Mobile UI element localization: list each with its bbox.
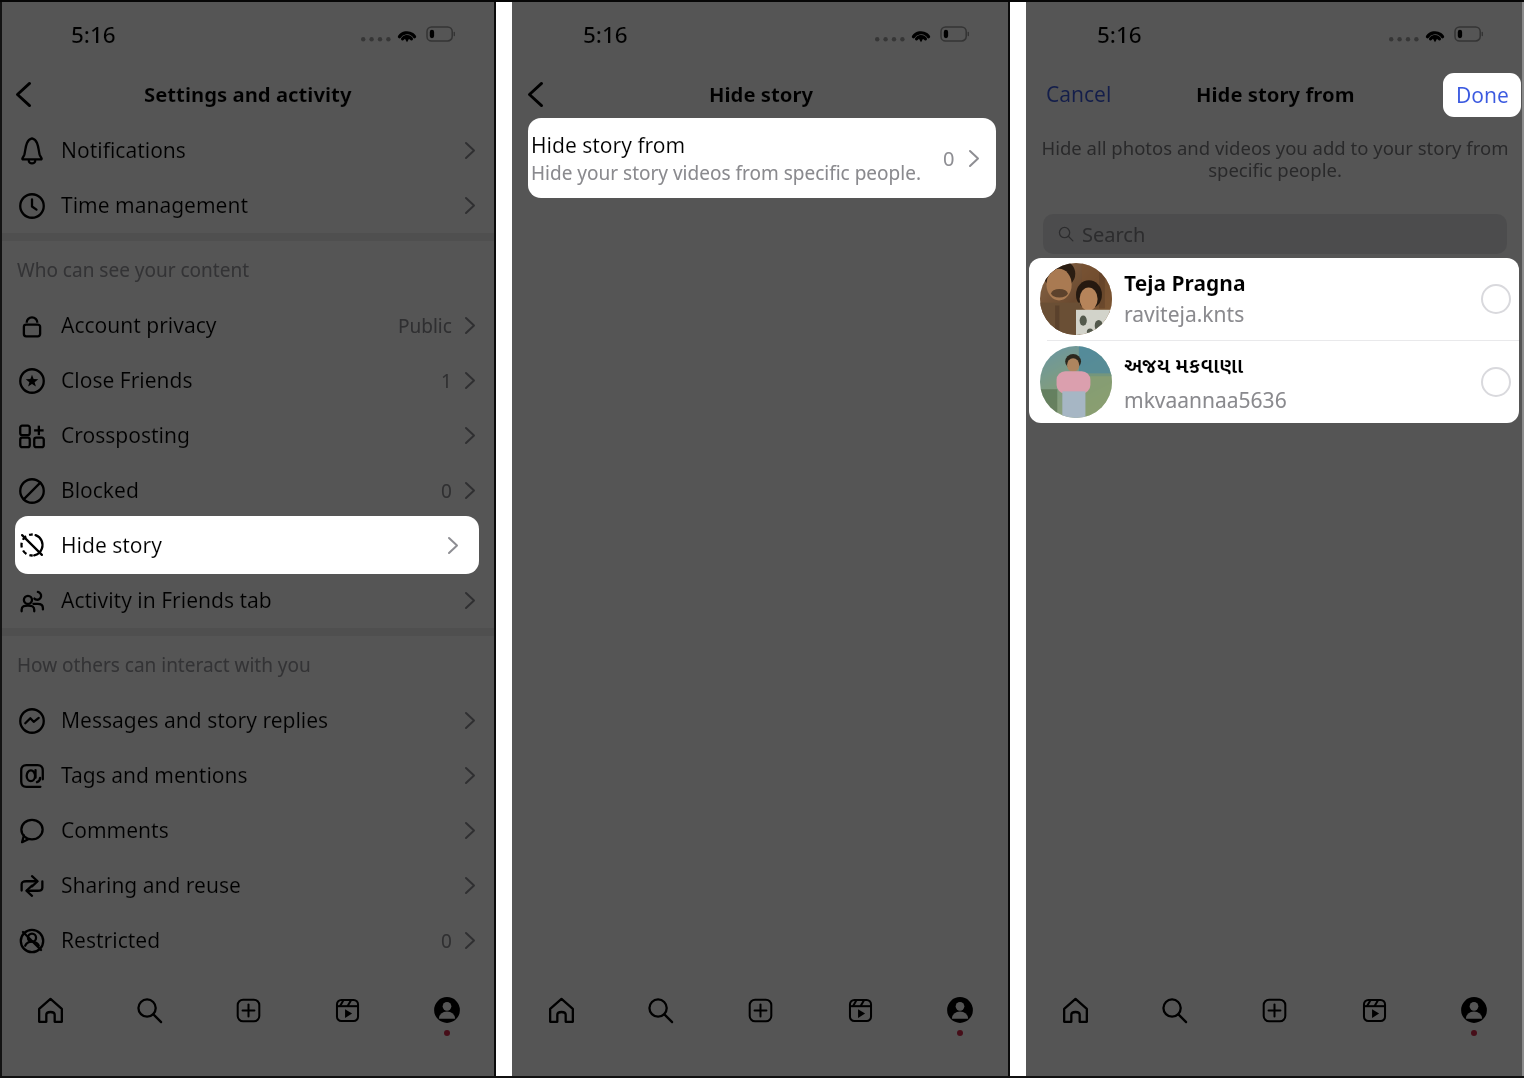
button[interactable]: Create [1224, 987, 1324, 1033]
button[interactable]: Profile [1424, 987, 1524, 1033]
button[interactable]: Home [0, 987, 100, 1033]
staticText: Who can see your content [17, 257, 250, 283]
button[interactable]: Crossposting [0, 408, 496, 463]
staticText: How others can interact with you [17, 652, 311, 678]
staticText: Public [398, 313, 452, 339]
staticText: 5:16 [1097, 19, 1142, 50]
button[interactable]: અજય મકવાણા [1029, 341, 1519, 423]
staticText: Messages and story replies [61, 706, 329, 735]
staticText: Time management [61, 191, 249, 220]
button[interactable]: Blocked [0, 463, 496, 518]
staticText: Hide story from [1196, 80, 1355, 108]
staticText: Hide story [709, 80, 814, 108]
staticText: 5:16 [71, 19, 116, 50]
staticText: અજય મકવાણા [1124, 349, 1243, 384]
staticText: Activity in Friends tab [61, 586, 272, 615]
button[interactable]: Sharing and reuse [0, 858, 496, 913]
button[interactable]: Search [611, 987, 710, 1033]
staticText: Hide story [61, 531, 162, 560]
staticText: Teja Pragna [1124, 269, 1246, 298]
staticText: 5:16 [583, 19, 628, 50]
button[interactable]: Teja Pragna [1029, 258, 1519, 340]
button[interactable]: Hide story [0, 518, 496, 573]
staticText: Restricted [61, 926, 161, 955]
button[interactable]: Messages and story replies [0, 693, 496, 748]
staticText: Settings and activity [144, 80, 352, 108]
staticText: 1 [441, 368, 452, 394]
staticText: Close Friends [61, 366, 193, 395]
button[interactable]: Search [100, 987, 199, 1033]
button[interactable]: Search [1125, 987, 1224, 1033]
button[interactable]: Create [199, 987, 298, 1033]
button[interactable]: Profile [910, 987, 1010, 1033]
button[interactable]: Search [1043, 214, 1507, 254]
staticText: Hide your story videos from specific peo… [531, 160, 921, 186]
button[interactable]: Cancel [1044, 78, 1114, 111]
button[interactable]: Profile [397, 987, 496, 1033]
button[interactable]: Back [514, 73, 556, 115]
staticText: Hide story [61, 531, 162, 560]
button[interactable]: Home [1026, 987, 1125, 1033]
button[interactable]: Create [710, 987, 810, 1033]
staticText: Hide story from [531, 131, 686, 160]
button[interactable]: Done [1443, 73, 1521, 117]
staticText: Blocked [61, 476, 139, 505]
button[interactable]: Reels [810, 987, 910, 1033]
staticText: Crossposting [61, 421, 190, 450]
button[interactable]: Reels [298, 987, 397, 1033]
button[interactable]: Restricted [0, 913, 496, 968]
staticText: 0 [943, 145, 955, 172]
button[interactable]: Notifications [0, 123, 496, 178]
staticText: raviteja.knts [1124, 300, 1245, 329]
button[interactable]: Account privacy [0, 298, 496, 353]
staticText: Sharing and reuse [61, 871, 241, 900]
button[interactable]: Hide story from [528, 118, 996, 198]
button[interactable]: Home [512, 987, 611, 1033]
button[interactable]: Reels [1324, 987, 1424, 1033]
staticText: Done [1456, 81, 1509, 110]
staticText: mkvaannaa5636 [1124, 386, 1287, 415]
staticText: Hide all photos and videos you add to yo… [1038, 135, 1512, 183]
staticText: Account privacy [61, 311, 217, 340]
button[interactable]: Comments [0, 803, 496, 858]
staticText: 0 [441, 478, 452, 504]
button[interactable]: Close Friends [0, 353, 496, 408]
staticText: Tags and mentions [61, 761, 248, 790]
button[interactable]: Time management [0, 178, 496, 233]
button[interactable]: Activity in Friends tab [0, 573, 496, 628]
button[interactable]: Tags and mentions [0, 748, 496, 803]
staticText: 0 [441, 928, 452, 954]
staticText: Notifications [61, 136, 186, 165]
staticText: Search [1082, 221, 1146, 248]
staticText: Cancel [1046, 80, 1112, 109]
button[interactable]: Hide story [15, 516, 479, 574]
staticText: Comments [61, 816, 169, 845]
button[interactable]: Back [2, 73, 44, 115]
